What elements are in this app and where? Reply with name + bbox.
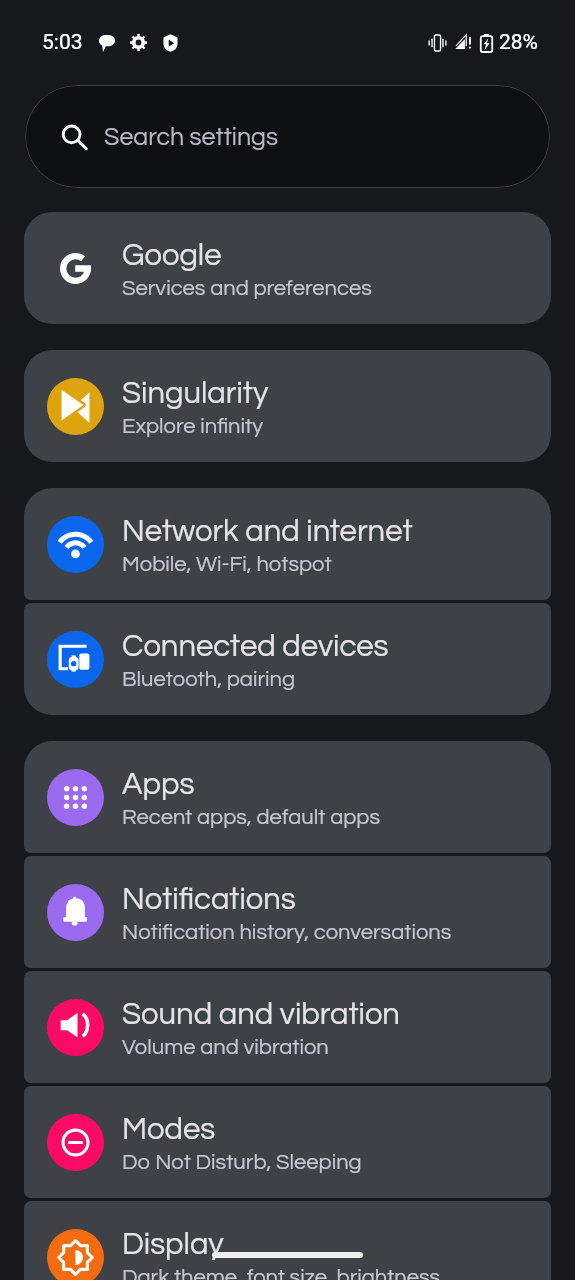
button[interactable]: Connected devices bbox=[24, 603, 551, 715]
other: Search bbox=[62, 125, 87, 150]
staticText: Sound and vibration bbox=[122, 999, 400, 1031]
button[interactable]: Singularity bbox=[24, 350, 551, 462]
staticText: Apps bbox=[122, 769, 195, 801]
button[interactable]: Network and internet bbox=[24, 488, 551, 600]
button[interactable]: Sound and vibration bbox=[24, 971, 551, 1083]
button[interactable]: Search bbox=[25, 85, 550, 188]
button[interactable]: Apps bbox=[24, 741, 551, 853]
staticText: Singularity bbox=[122, 378, 269, 410]
button[interactable]: Notifications bbox=[24, 856, 551, 968]
staticText: Services and preferences bbox=[122, 277, 372, 300]
staticText: 5:03 bbox=[42, 30, 83, 55]
staticText: Display bbox=[122, 1229, 224, 1261]
staticText: Google bbox=[122, 240, 222, 272]
button[interactable]: Google bbox=[24, 212, 551, 324]
staticText: 28% bbox=[499, 30, 538, 55]
staticText: Recent apps, default apps bbox=[122, 806, 381, 829]
button[interactable]: Display bbox=[24, 1201, 551, 1280]
staticText: Bluetooth, pairing bbox=[122, 668, 296, 691]
staticText: Network and internet bbox=[122, 516, 413, 548]
staticText: Volume and vibration bbox=[122, 1036, 329, 1059]
staticText: Do Not Disturb, Sleeping bbox=[122, 1151, 362, 1174]
staticText: Modes bbox=[122, 1114, 216, 1146]
staticText: Explore infinity bbox=[122, 415, 264, 438]
staticText: Notifications bbox=[122, 884, 296, 916]
staticText: Notification history, conversations bbox=[122, 921, 452, 944]
staticText: Mobile, Wi-Fi, hotspot bbox=[122, 553, 332, 576]
staticText: Connected devices bbox=[122, 631, 389, 663]
staticText: Dark theme, font size, brightness bbox=[122, 1266, 441, 1280]
staticText: Search settings bbox=[104, 124, 279, 150]
button[interactable]: Modes bbox=[24, 1086, 551, 1198]
